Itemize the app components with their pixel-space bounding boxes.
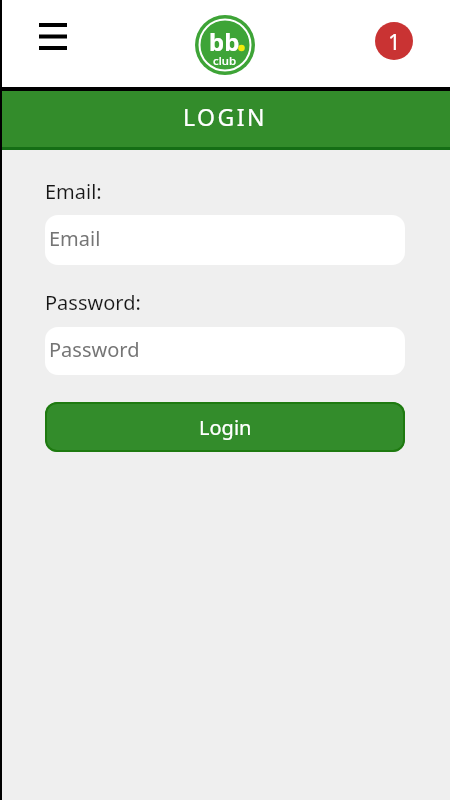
staticText: Email:	[45, 178, 102, 205]
staticText: Login	[199, 414, 252, 441]
button[interactable]	[31, 14, 75, 58]
staticText: LOGIN	[183, 101, 268, 132]
staticText: bb	[209, 25, 240, 58]
staticText: Email	[49, 225, 101, 252]
button[interactable]: Email	[45, 215, 405, 265]
staticText: 1	[388, 26, 401, 56]
button[interactable]: Password	[45, 327, 405, 375]
button[interactable]: Login	[45, 402, 405, 452]
staticText: club	[213, 53, 237, 69]
staticText: Password	[49, 336, 140, 363]
staticText: Password:	[45, 289, 141, 316]
button[interactable]: 1	[375, 22, 413, 60]
button[interactable]: bb	[195, 15, 255, 75]
